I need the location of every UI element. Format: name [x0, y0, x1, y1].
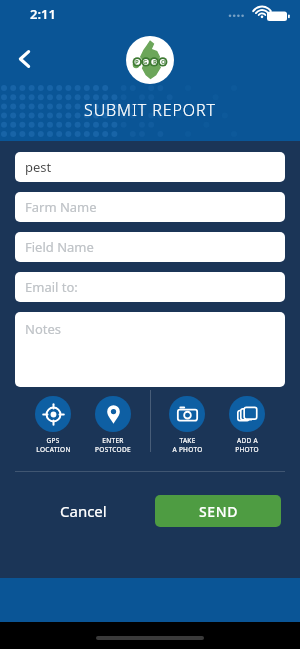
staticText: 2:11 [30, 5, 56, 23]
button[interactable]: pest [15, 152, 285, 182]
button[interactable]: Cancel [38, 495, 128, 527]
staticText: Email to: [25, 278, 78, 296]
staticText: LOCATION [36, 445, 71, 454]
button[interactable]: GPS location [24, 396, 82, 454]
staticText: TAKE [179, 436, 196, 445]
staticText: A PHOTO [172, 445, 203, 454]
button[interactable]: Field Name [15, 232, 285, 262]
button[interactable]: PGRO logo [126, 36, 174, 84]
staticText: Cancel [60, 501, 107, 521]
button[interactable]: Farm Name [15, 192, 285, 222]
button[interactable]: Take a photo [158, 396, 216, 454]
button[interactable]: Add a photo [218, 396, 276, 454]
button[interactable]: Back [6, 40, 44, 78]
staticText: P [135, 58, 139, 66]
staticText: POSTCODE [95, 445, 131, 454]
staticText: ENTER [102, 436, 124, 445]
button[interactable]: Email to: [15, 272, 285, 302]
button[interactable]: SEND [155, 495, 281, 527]
staticText: Notes [25, 320, 61, 338]
staticText: O [161, 58, 166, 66]
staticText: G [143, 58, 148, 66]
staticText: R [153, 58, 157, 66]
staticText: SEND [199, 502, 238, 521]
staticText: ADD A [237, 436, 258, 445]
staticText: SUBMIT REPORT [84, 99, 216, 121]
staticText: GPS [46, 436, 60, 445]
button[interactable]: Enter postcode [84, 396, 142, 454]
staticText: PHOTO [235, 445, 259, 454]
staticText: pest [25, 158, 52, 176]
button[interactable]: Notes [15, 312, 285, 387]
staticText: Field Name [25, 238, 94, 256]
staticText: Farm Name [25, 198, 97, 216]
